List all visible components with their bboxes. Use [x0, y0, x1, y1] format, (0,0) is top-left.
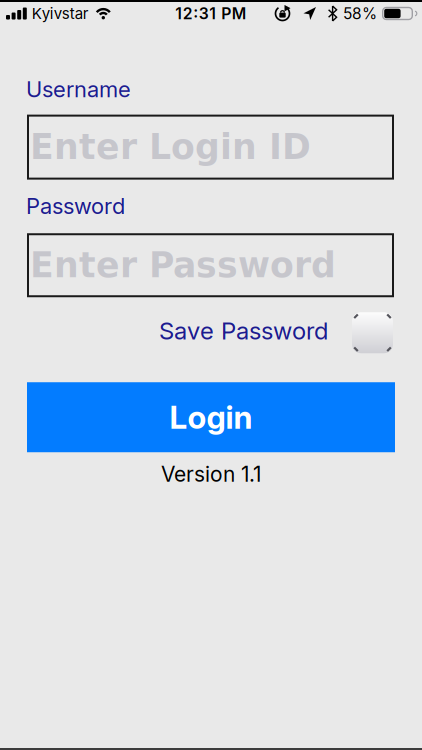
- staticText: 58%: [343, 4, 377, 23]
- button[interactable]: Enter Password: [27, 233, 394, 297]
- staticText: Version 1.1: [161, 461, 261, 487]
- button[interactable]: Enter Login ID: [27, 115, 394, 180]
- staticText: Password: [26, 193, 125, 219]
- staticText: Save Password: [159, 316, 328, 345]
- staticText: 12:31 PM: [175, 4, 247, 23]
- staticText: Enter Login ID: [30, 127, 311, 167]
- staticText: Enter Password: [30, 245, 336, 285]
- button[interactable]: Login: [27, 382, 395, 452]
- staticText: Kyivstar: [32, 4, 89, 23]
- staticText: Username: [26, 76, 131, 103]
- staticText: Login: [169, 398, 252, 436]
- button[interactable]: Save Password: [352, 312, 393, 353]
